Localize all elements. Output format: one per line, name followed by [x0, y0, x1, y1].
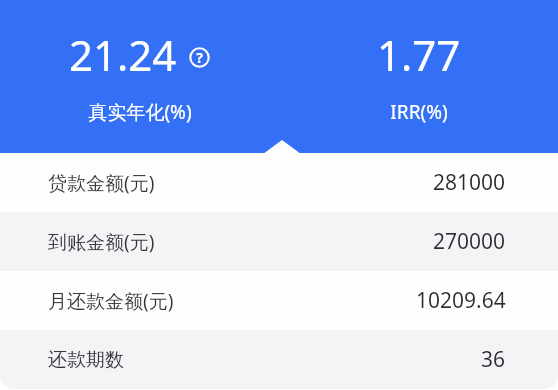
staticText: IRR(%): [390, 99, 448, 125]
staticText: 270000: [433, 227, 506, 256]
staticText: 21.24: [69, 26, 177, 83]
staticText: 真实年化(%): [88, 99, 192, 125]
button[interactable]: 月还款金额(元): [0, 271, 558, 330]
staticText: 到账金额(元): [48, 229, 155, 255]
staticText: 36: [481, 345, 506, 374]
button[interactable]: Help about 真实年化: [189, 47, 210, 68]
button[interactable]: 到账金额(元): [0, 212, 558, 271]
button[interactable]: 还款期数: [0, 330, 558, 389]
staticText: ?: [196, 48, 203, 67]
staticText: 还款期数: [48, 348, 124, 372]
staticText: 1.77: [377, 26, 461, 83]
staticText: 月还款金额(元): [48, 288, 174, 314]
staticText: 281000: [433, 168, 506, 197]
staticText: 贷款金额(元): [48, 170, 155, 196]
staticText: 10209.64: [416, 286, 506, 315]
button[interactable]: 贷款金额(元): [0, 153, 558, 212]
